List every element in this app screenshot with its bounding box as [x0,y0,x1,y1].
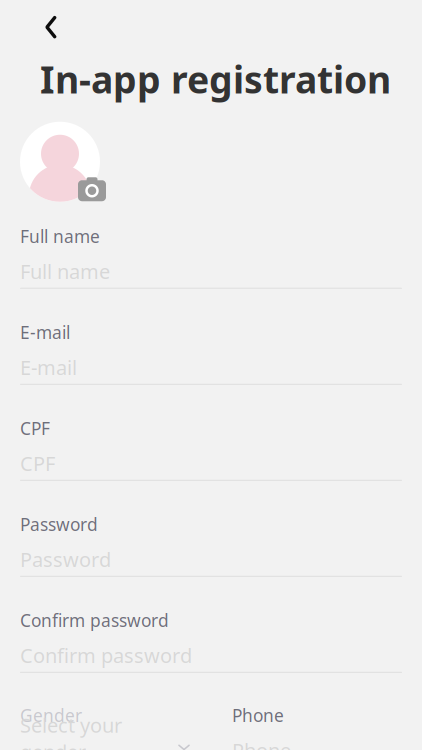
staticText: Full name [20,225,100,248]
button[interactable]: Confirm password [20,609,402,673]
staticText: Gender [20,704,82,727]
staticText: Password [20,546,111,573]
staticText: E-mail [20,354,77,381]
button[interactable]: E-mail [20,321,402,385]
staticText: E-mail [20,321,70,344]
button[interactable]: CPF [20,417,402,481]
button[interactable]: Full name [20,225,402,289]
staticText: Password [20,513,98,536]
button[interactable]: Back [34,10,68,44]
button[interactable]: Gender [20,704,192,750]
staticText: In-app registration [40,54,391,104]
staticText: Select your gender [20,712,122,750]
button[interactable]: Password [20,513,402,577]
staticText: Full name [20,258,110,285]
button[interactable]: Phone [232,704,402,750]
staticText: Phone [232,704,284,727]
staticText: CPF [20,450,55,477]
staticText: Phone [232,737,291,750]
staticText: CPF [20,417,50,440]
staticText: Confirm password [20,642,192,669]
button[interactable]: Change profile photo [20,122,130,202]
staticText: Confirm password [20,609,169,632]
